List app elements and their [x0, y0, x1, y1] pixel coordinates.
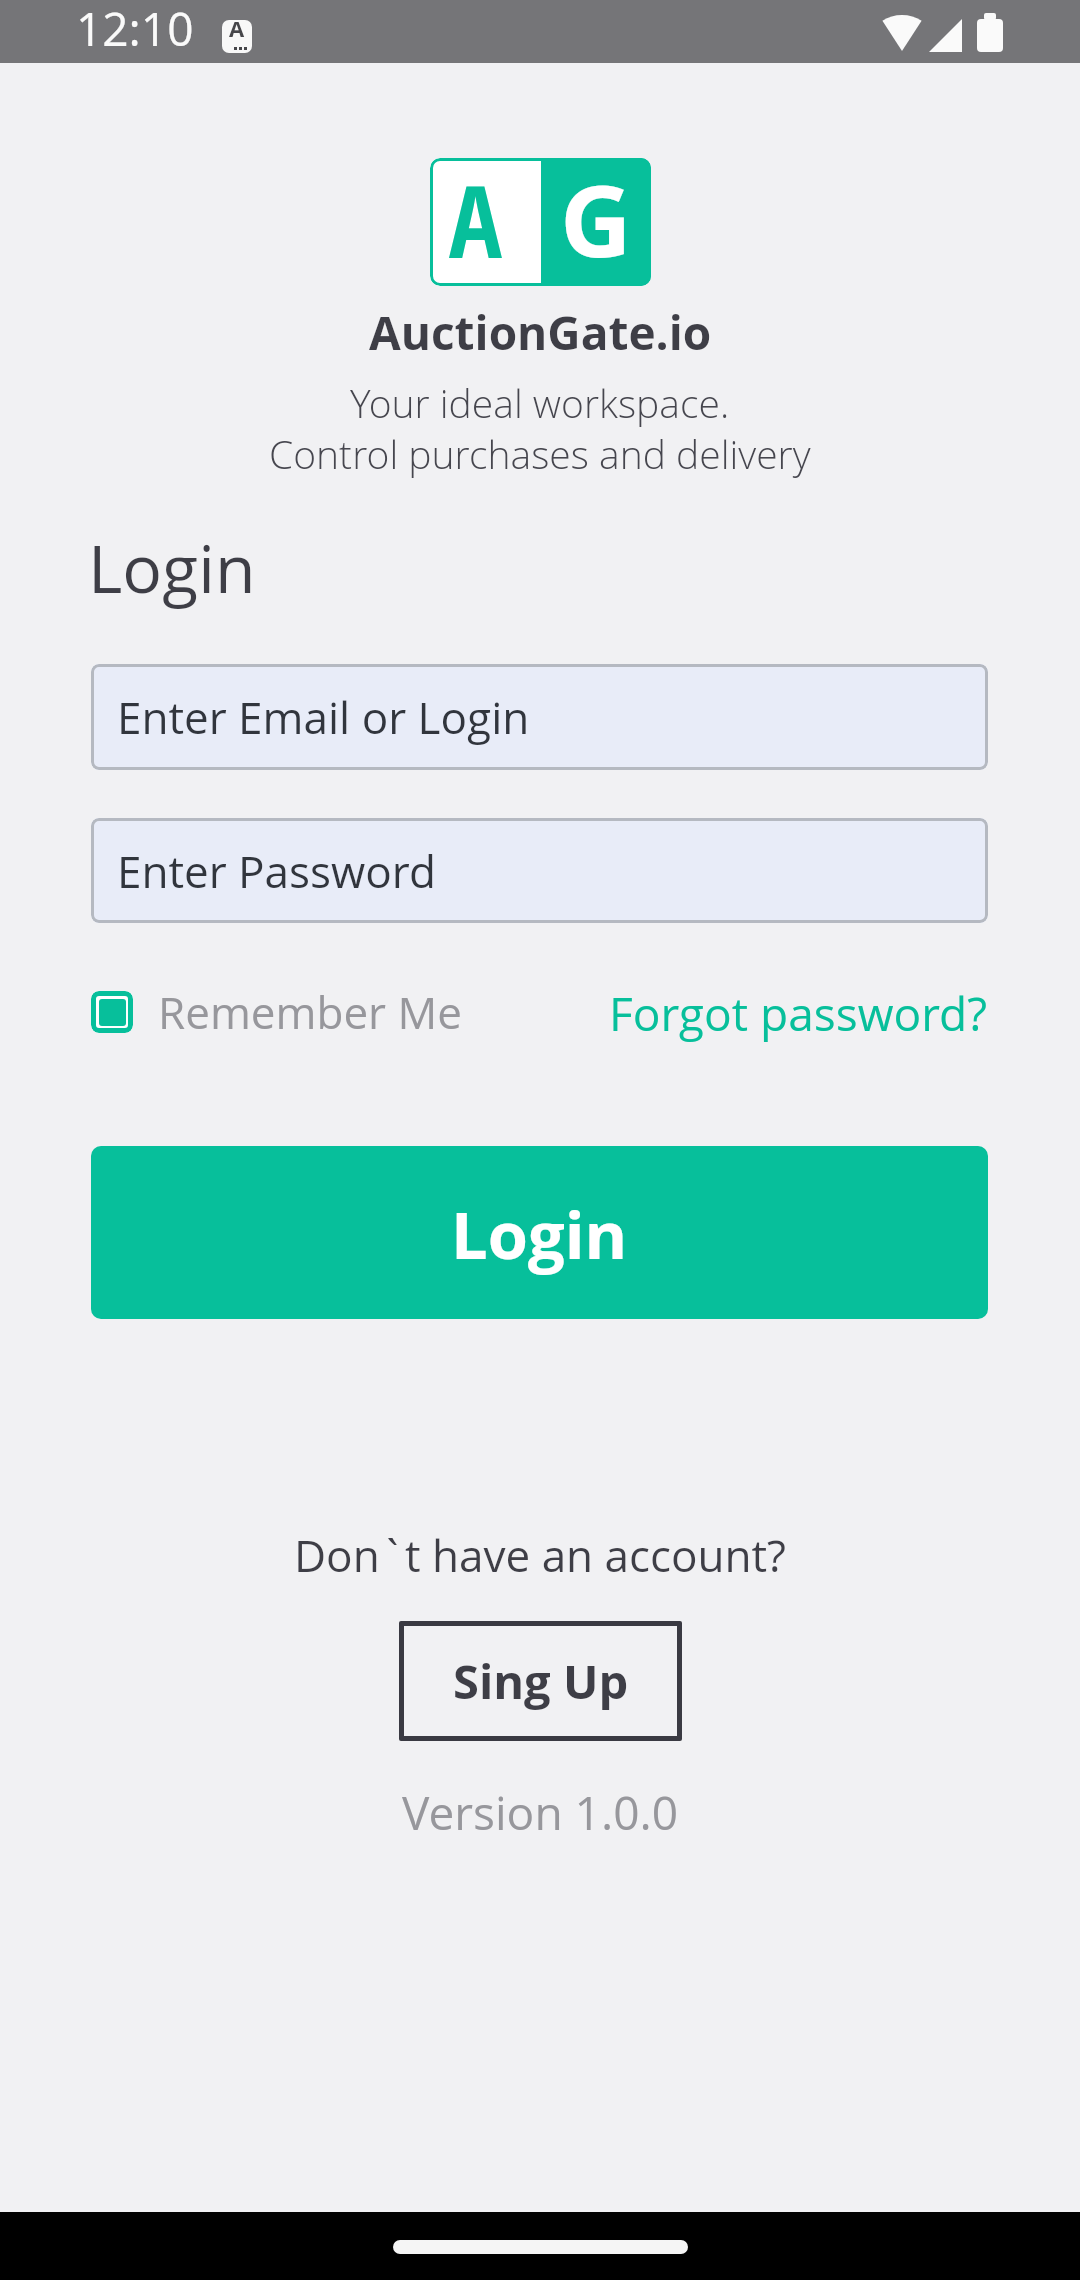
staticText: A: [229, 20, 245, 43]
staticText: Remember Me: [158, 982, 462, 1042]
staticText: Login: [88, 522, 256, 612]
staticText: 12:10: [76, 0, 194, 60]
staticText: Your ideal workspace.: [350, 376, 730, 429]
button[interactable]: Login: [91, 1146, 988, 1319]
staticText: Enter Password: [117, 841, 436, 901]
button[interactable]: [91, 991, 133, 1033]
button[interactable]: Forgot password?: [609, 982, 988, 1042]
staticText: Version 1.0.0: [402, 1781, 678, 1844]
staticText: Control purchases and delivery: [269, 427, 811, 480]
staticText: A: [449, 158, 502, 280]
staticText: Don`t have an account?: [294, 1525, 786, 1585]
staticText: Enter Email or Login: [117, 687, 530, 747]
staticText: AuctionGate.io: [369, 301, 712, 364]
staticText: G: [560, 158, 632, 279]
staticText: Login: [451, 1190, 628, 1279]
staticText: Sing Up: [453, 1649, 629, 1713]
button[interactable]: Sing Up: [399, 1621, 682, 1741]
button[interactable]: Enter Email or Login: [91, 664, 988, 770]
button[interactable]: Enter Password: [91, 818, 988, 923]
